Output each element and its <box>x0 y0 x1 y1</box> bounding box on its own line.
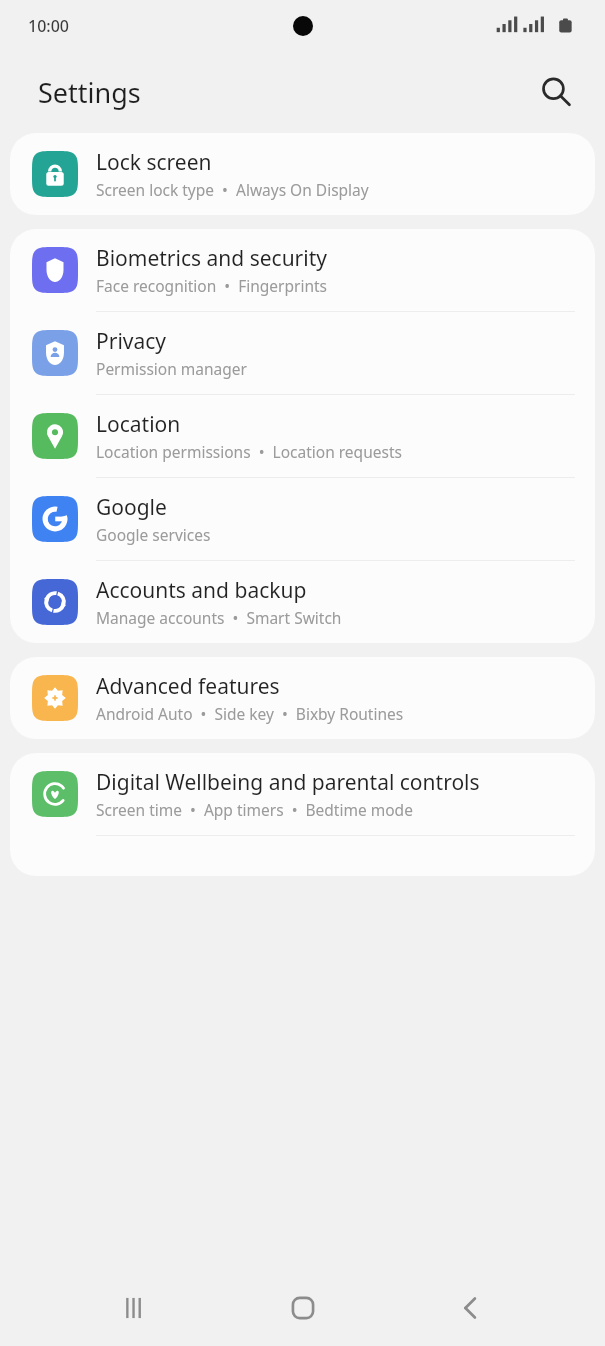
button[interactable]: Recent apps <box>106 1280 162 1336</box>
button[interactable]: Digital Wellbeing and parental controls <box>10 753 595 835</box>
button[interactable]: Privacy <box>10 312 595 394</box>
staticText: Settings <box>38 74 141 111</box>
button[interactable]: Search <box>531 67 581 117</box>
button[interactable]: Lock screen <box>10 133 595 215</box>
staticText: Screen lock type • Always On Display <box>96 179 369 200</box>
staticText: Accounts and backup <box>96 576 307 605</box>
staticText: Location <box>96 410 181 439</box>
staticText: Google services <box>96 524 211 545</box>
button[interactable]: Biometrics and security <box>10 229 595 311</box>
staticText: 10:00 <box>28 15 69 37</box>
staticText: Android Auto • Side key • Bixby Routines <box>96 703 404 724</box>
button[interactable]: Home <box>275 1280 331 1336</box>
staticText: Privacy <box>96 327 167 356</box>
staticText: Screen time • App timers • Bedtime mode <box>96 799 413 820</box>
button[interactable]: Google <box>10 478 595 560</box>
staticText: Lock screen <box>96 148 212 177</box>
staticText: Advanced features <box>96 672 280 701</box>
button[interactable]: Advanced features <box>10 657 595 739</box>
staticText: Manage accounts • Smart Switch <box>96 607 342 628</box>
staticText: Biometrics and security <box>96 244 327 273</box>
staticText: Permission manager <box>96 358 247 379</box>
button[interactable]: Back <box>443 1280 499 1336</box>
staticText: Google <box>96 493 167 522</box>
button[interactable]: Accounts and backup <box>10 561 595 643</box>
staticText: Location permissions • Location requests <box>96 441 402 462</box>
button[interactable]: Location <box>10 395 595 477</box>
staticText: Face recognition • Fingerprints <box>96 275 328 296</box>
staticText: Digital Wellbeing and parental controls <box>96 768 480 797</box>
